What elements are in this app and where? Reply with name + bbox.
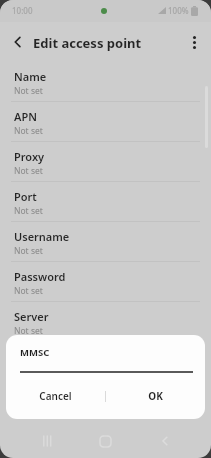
button[interactable]: Cancel: [6, 381, 105, 411]
staticText: Not set: [14, 325, 43, 337]
staticText: Cancel: [39, 389, 72, 403]
staticText: Name: [14, 69, 47, 84]
button[interactable]: OK: [106, 381, 205, 411]
button[interactable]: APN: [0, 102, 211, 142]
staticText: Not set: [14, 245, 43, 257]
staticText: Not set: [14, 285, 43, 297]
button[interactable]: Home: [93, 429, 117, 453]
staticText: Not set: [14, 165, 43, 177]
button[interactable]: Proxy: [0, 142, 211, 182]
staticText: MMSC: [20, 346, 50, 359]
button[interactable]: More options: [182, 30, 206, 54]
staticText: Port: [14, 189, 37, 204]
staticText: Proxy: [14, 149, 45, 164]
staticText: Edit access point: [33, 34, 142, 52]
staticText: OK: [148, 389, 163, 403]
staticText: Password: [14, 269, 66, 284]
button[interactable]: Username: [0, 222, 211, 262]
staticText: Username: [14, 229, 70, 244]
staticText: Not set: [14, 205, 43, 217]
staticText: Not set: [14, 125, 43, 137]
staticText: Server: [14, 309, 49, 324]
button[interactable]: Name: [0, 62, 211, 102]
staticText: 10:00: [12, 5, 33, 16]
button[interactable]: Password: [0, 262, 211, 302]
button[interactable]: Port: [0, 182, 211, 222]
staticText: APN: [14, 109, 37, 124]
button[interactable]: Recent apps: [35, 429, 59, 453]
button[interactable]: Server: [0, 302, 211, 342]
staticText: Not set: [14, 85, 43, 97]
button[interactable]: Back: [6, 30, 30, 54]
staticText: 100%: [168, 5, 189, 16]
